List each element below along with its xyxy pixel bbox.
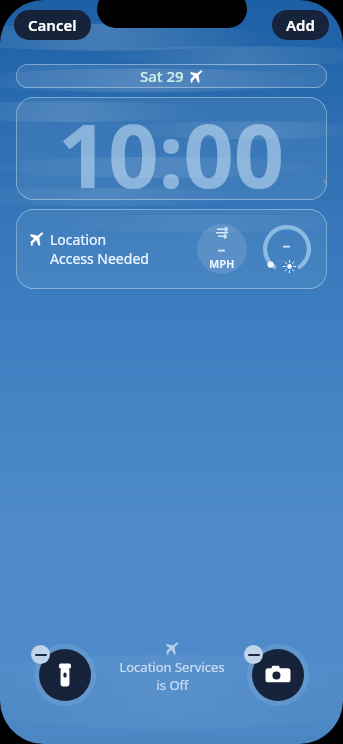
staticText: Add <box>286 15 315 35</box>
button[interactable]: Remove Flashlight <box>31 645 50 664</box>
staticText: 10:00 <box>58 97 285 197</box>
button[interactable]: Cancel <box>14 10 91 40</box>
staticText: -- <box>218 241 226 256</box>
button[interactable]: Add <box>272 10 329 40</box>
button[interactable]: Flashlight <box>39 649 91 701</box>
staticText: MPH <box>209 256 235 271</box>
button[interactable]: Camera <box>252 649 304 701</box>
button[interactable]: Wind speed <box>197 224 247 274</box>
button[interactable]: Remove Camera <box>244 645 263 664</box>
staticText: Cancel <box>28 15 77 35</box>
staticText: Sat 29 <box>140 66 184 86</box>
staticText: Location <box>50 230 107 249</box>
button[interactable]: Brightness <box>261 223 313 275</box>
button[interactable]: Location <box>16 209 327 289</box>
staticText: -- <box>283 237 291 252</box>
button[interactable]: 10:00 <box>16 97 327 200</box>
staticText: is Off <box>156 676 189 694</box>
staticText: Access Needed <box>50 249 149 268</box>
button[interactable]: Sat 29 <box>16 64 327 88</box>
staticText: Location Services <box>119 658 225 676</box>
